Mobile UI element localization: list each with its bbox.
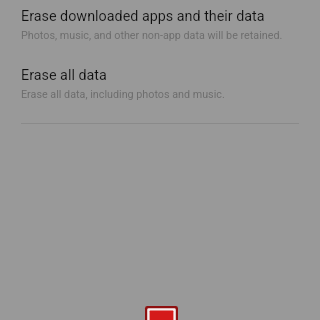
- staticText: Erase all data: [21, 67, 107, 84]
- button[interactable]: Erase downloaded apps and their data: [0, 0, 320, 52]
- staticText: Erase downloaded apps and their data: [21, 8, 265, 25]
- staticText: Photos, music, and other non-app data wi…: [21, 29, 283, 42]
- staticText: Erase all data, including photos and mus…: [21, 88, 225, 101]
- button[interactable]: Erase all data: [0, 59, 320, 111]
- button[interactable]: Erase all data: [145, 306, 178, 320]
